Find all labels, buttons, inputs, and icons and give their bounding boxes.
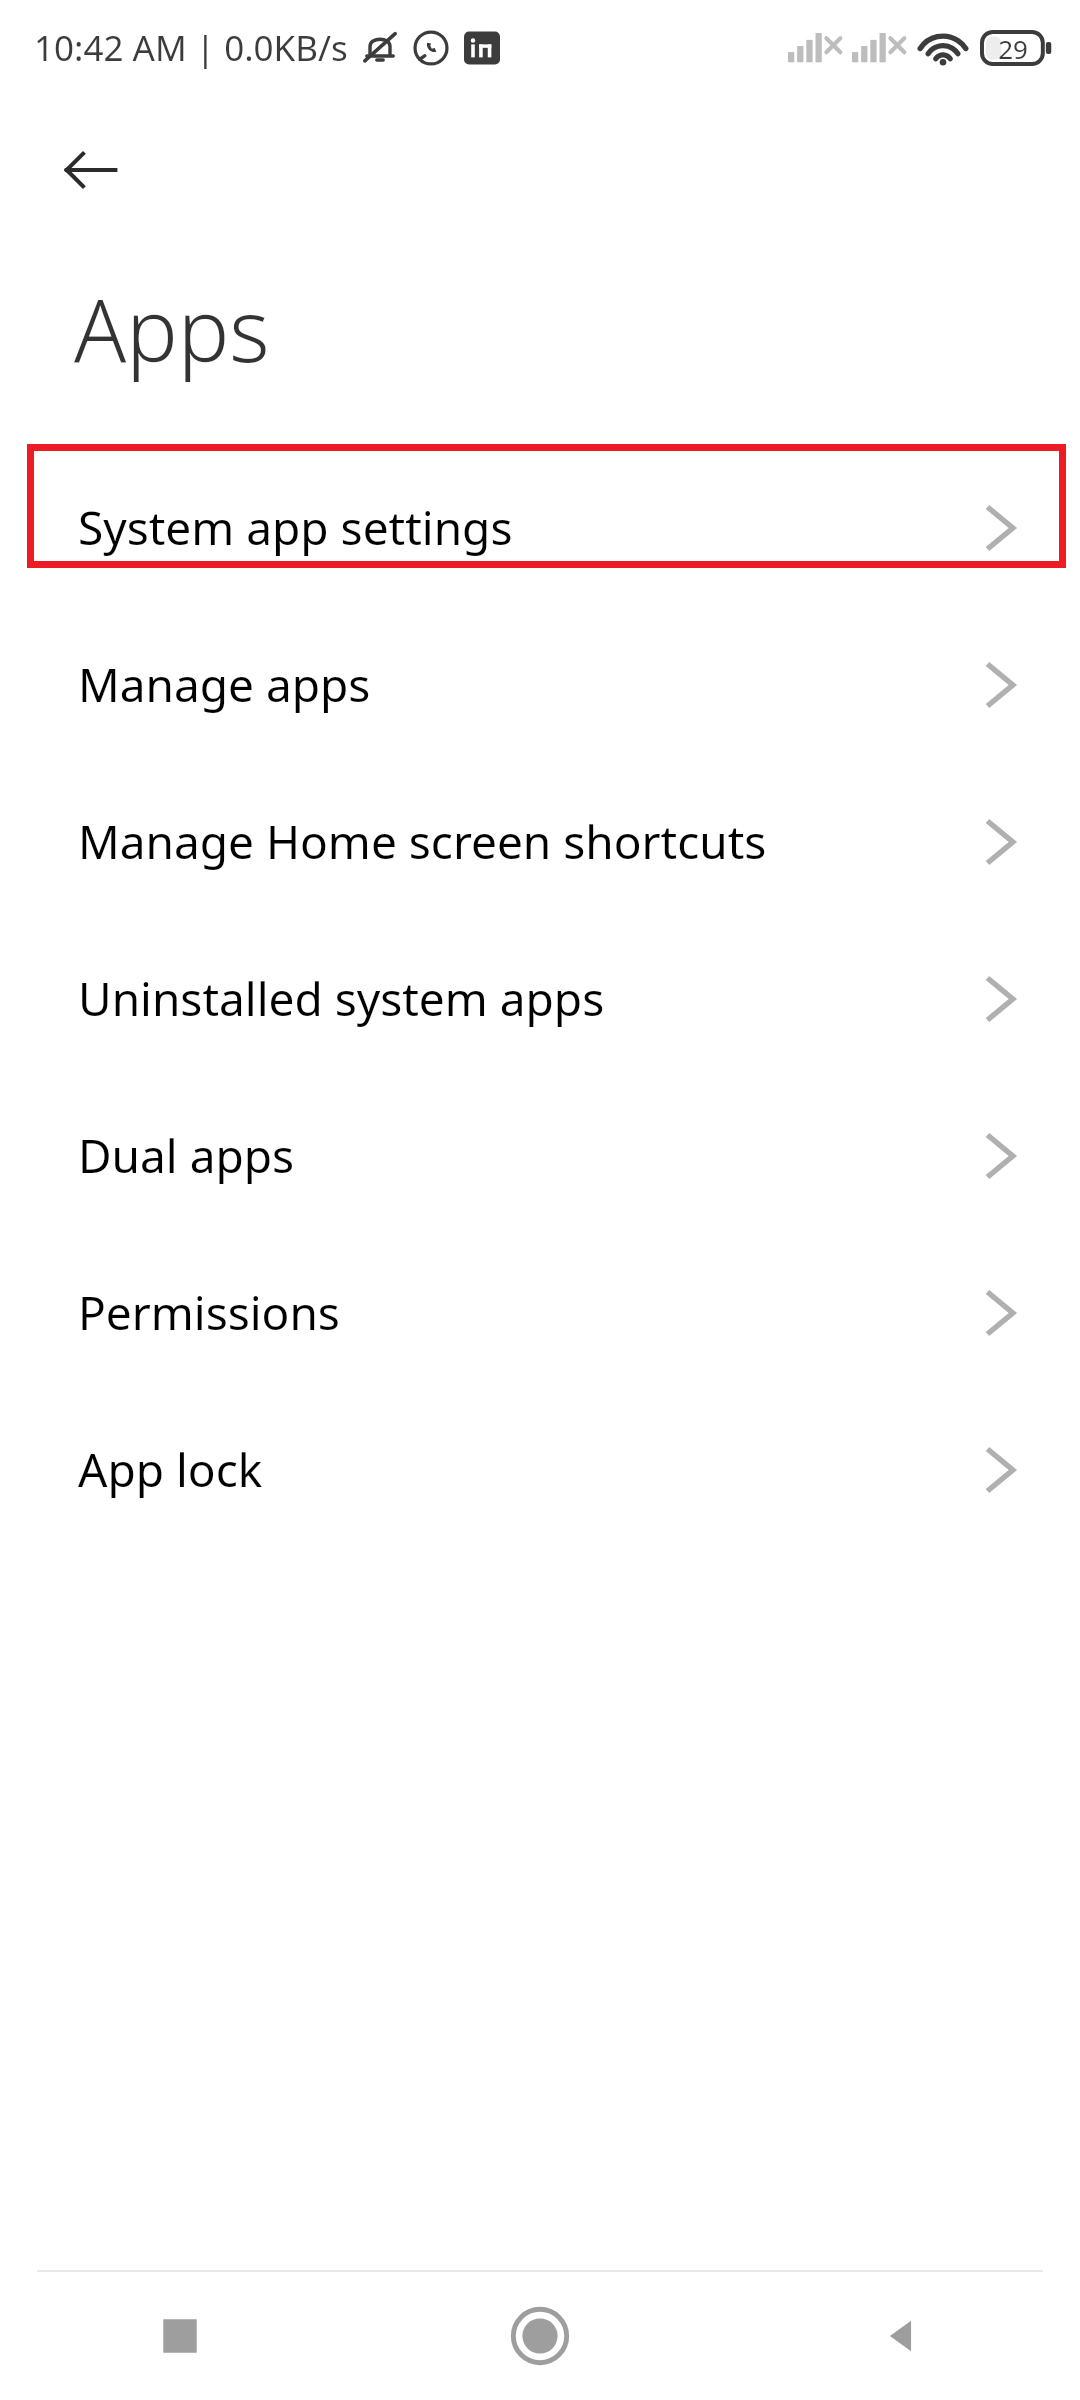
staticText: System app settings [78, 496, 984, 559]
staticText: Manage Home screen shortcuts [78, 810, 984, 873]
button[interactable]: App lock [0, 1391, 1080, 1548]
button[interactable]: Uninstalled system apps [0, 920, 1080, 1077]
button[interactable]: Home [360, 2272, 720, 2400]
button[interactable]: Back [720, 2272, 1080, 2400]
button[interactable]: Back [42, 122, 138, 218]
staticText: Apps [74, 270, 270, 387]
button[interactable]: Permissions [0, 1234, 1080, 1391]
staticText: Permissions [78, 1281, 984, 1344]
staticText: App lock [78, 1438, 984, 1501]
staticText: 29 [998, 31, 1028, 66]
button[interactable]: System app settings [0, 449, 1080, 606]
staticText: Uninstalled system apps [78, 967, 984, 1030]
staticText: Manage apps [78, 653, 984, 716]
staticText: Dual apps [78, 1124, 984, 1187]
button[interactable]: Manage Home screen shortcuts [0, 763, 1080, 920]
staticText: 10:42 AM | 0.0KB/s [34, 24, 348, 72]
button[interactable]: Manage apps [0, 606, 1080, 763]
button[interactable]: Dual apps [0, 1077, 1080, 1234]
button[interactable]: Recent apps [0, 2272, 360, 2400]
